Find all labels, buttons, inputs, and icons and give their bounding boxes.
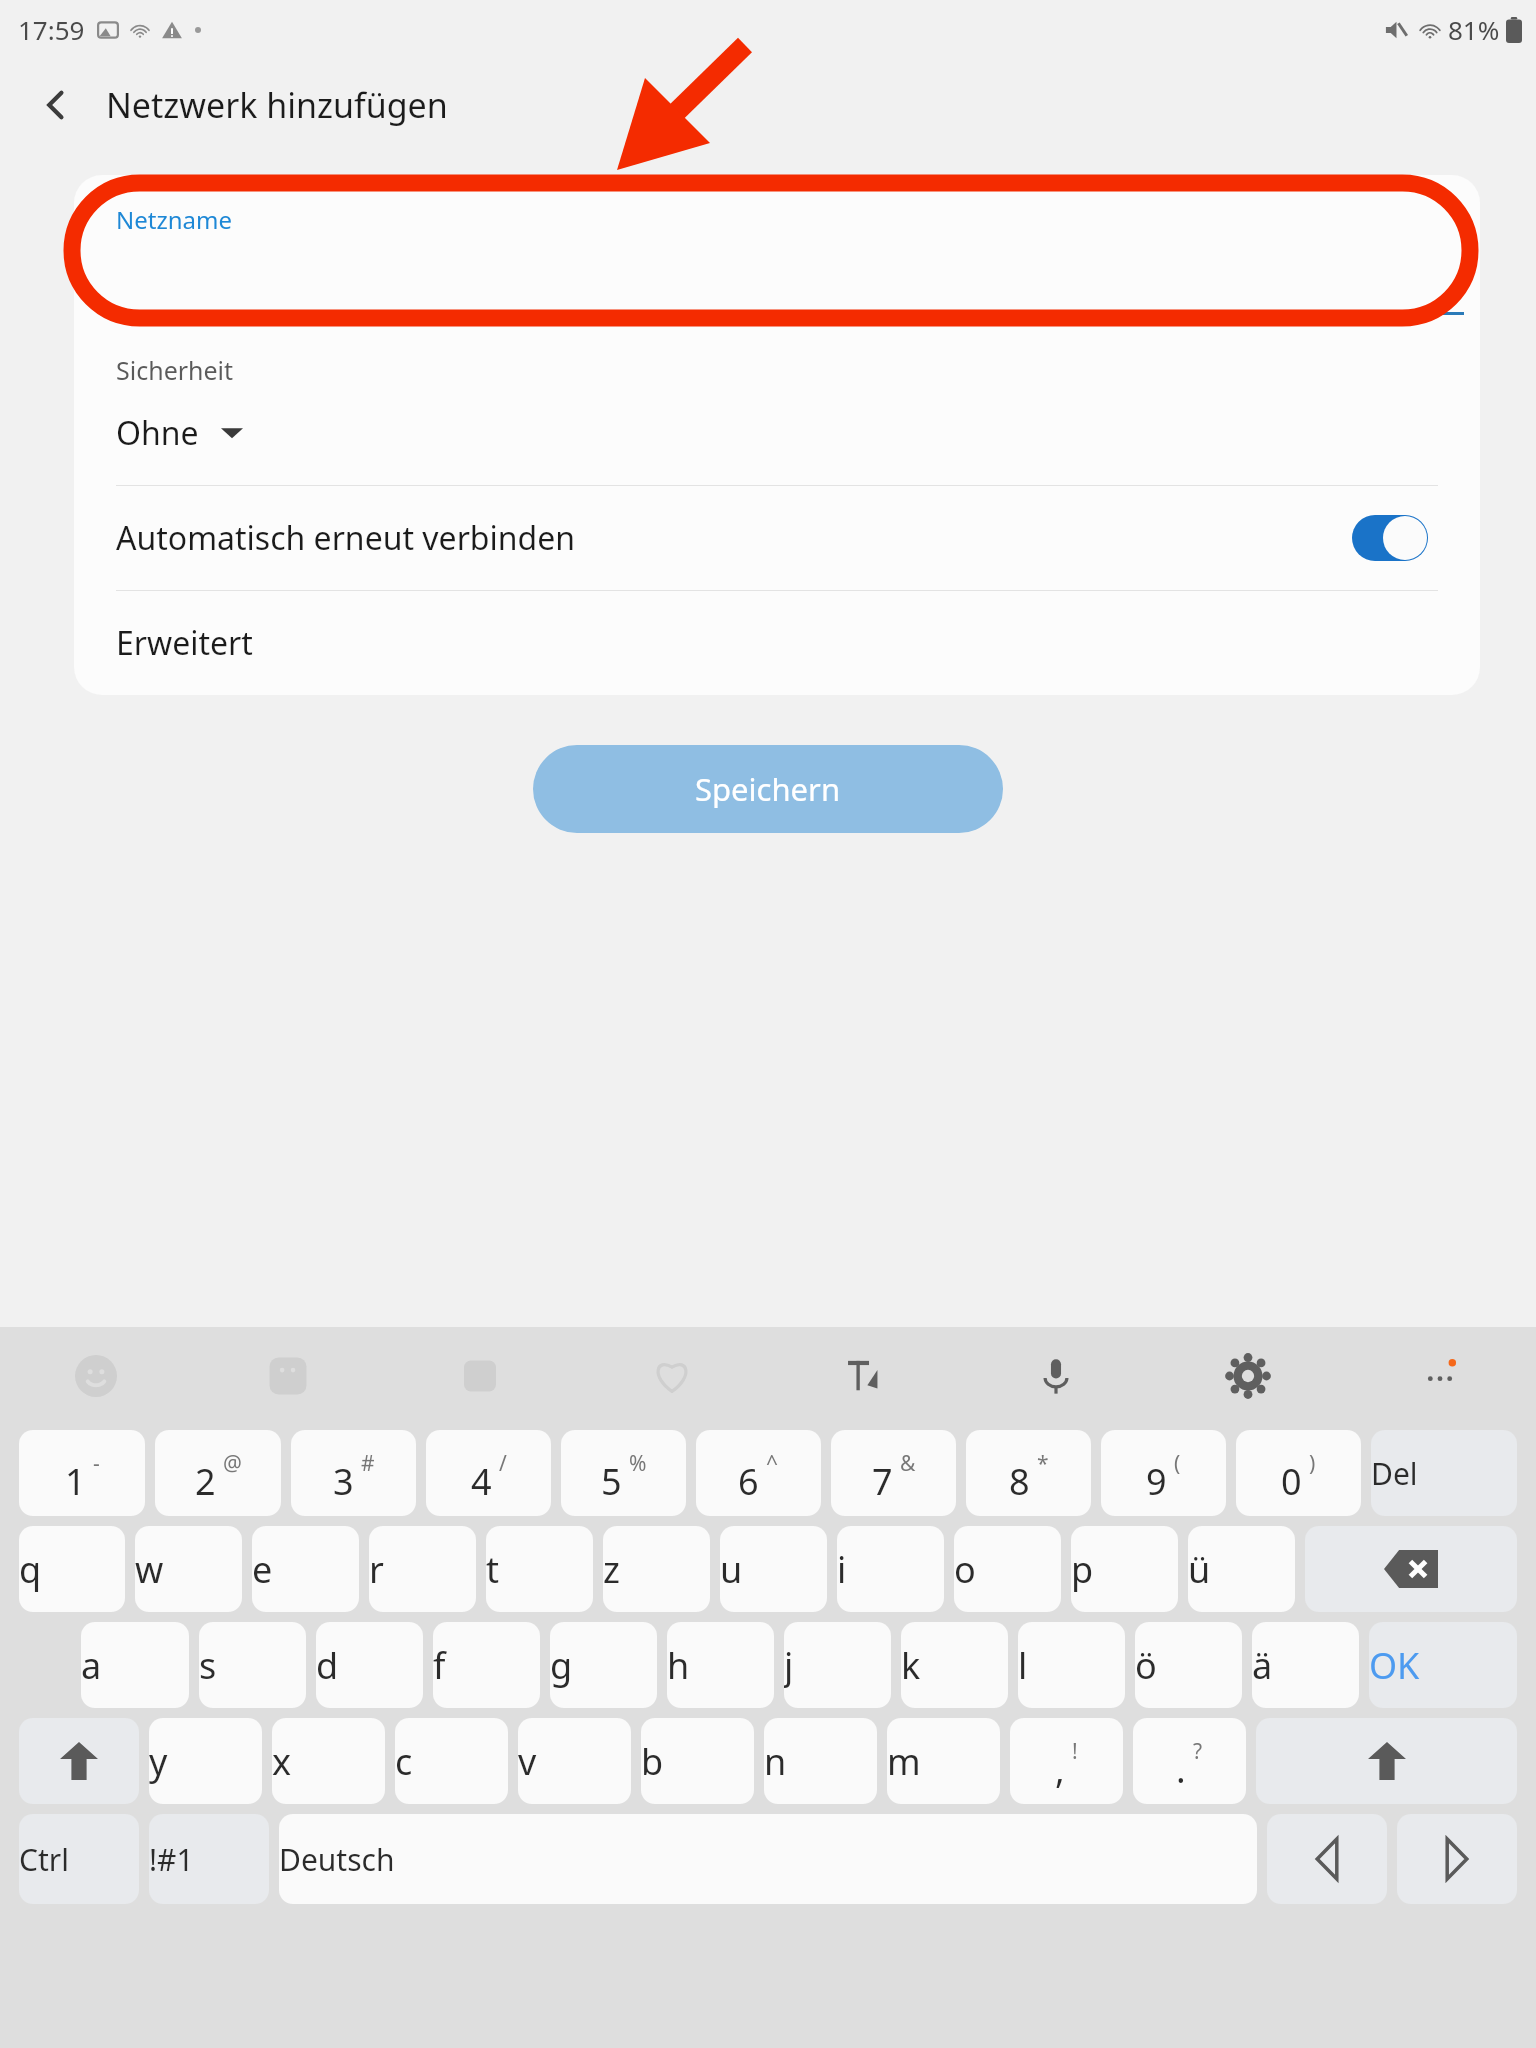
staticText: Erweitert [116,621,253,665]
button[interactable]: OK [1369,1622,1517,1708]
button[interactable]: Emoji [0,1327,192,1425]
button[interactable]: 2 [155,1430,281,1516]
staticText: 5 [601,1457,622,1506]
button[interactable]: . [1133,1718,1246,1804]
button[interactable]: t [486,1526,593,1612]
button[interactable]: Speichern [533,745,1003,833]
button[interactable]: ö [1135,1622,1242,1708]
staticText: q [19,1545,125,1594]
button[interactable]: Sicherheit [74,343,1480,471]
button[interactable]: Einstellungen [1152,1327,1344,1425]
button[interactable]: Erweitert [74,591,1480,695]
button[interactable]: Pfeil links [1267,1814,1387,1904]
staticText: 8 [1009,1457,1030,1506]
button[interactable]: w [135,1526,242,1612]
staticText: t [486,1545,593,1594]
staticText: s [199,1641,306,1690]
button[interactable]: 5 [561,1430,686,1516]
button[interactable]: y [149,1718,262,1804]
staticText: - [93,1449,100,1478]
staticText: Sicherheit [116,353,234,387]
button[interactable]: 7 [831,1430,956,1516]
staticText: f [433,1641,540,1690]
staticText: Ctrl [19,1839,139,1880]
staticText: !#1 [149,1839,269,1880]
button[interactable]: 0 [1236,1430,1361,1516]
staticText: 2 [195,1457,216,1506]
button[interactable]: Löschen [1305,1526,1517,1612]
button[interactable]: Netzname [74,175,1480,315]
button[interactable]: !#1 [149,1814,269,1904]
button[interactable]: Sticker [192,1327,384,1425]
button[interactable]: m [887,1718,1000,1804]
button[interactable]: 9 [1101,1430,1226,1516]
button[interactable]: v [518,1718,631,1804]
button[interactable]: ä [1252,1622,1359,1708]
button[interactable]: Mehr [1344,1327,1536,1425]
button[interactable]: ü [1188,1526,1295,1612]
staticText: @ [223,1449,242,1478]
button[interactable]: Zurück [28,77,84,133]
button[interactable]: a [81,1622,189,1708]
staticText: ) [1309,1449,1316,1478]
button[interactable]: r [369,1526,476,1612]
staticText: d [316,1641,423,1690]
staticText: e [252,1545,359,1594]
button[interactable]: k [901,1622,1008,1708]
button[interactable]: Deutsch [279,1814,1257,1904]
staticText: . [1176,1745,1186,1794]
button[interactable]: h [667,1622,774,1708]
staticText: k [901,1641,1008,1690]
button[interactable]: Textbearbeitung [768,1327,960,1425]
staticText: v [518,1737,631,1786]
button[interactable]: Umschalt [19,1718,139,1804]
button[interactable]: Automatisch erneut verbinden [74,486,1480,590]
staticText: ö [1135,1641,1242,1690]
button[interactable]: Pfeil rechts [1397,1814,1517,1904]
button[interactable]: u [720,1526,827,1612]
button[interactable]: x [272,1718,385,1804]
button[interactable]: , [1010,1718,1123,1804]
staticText: OK [1369,1641,1517,1690]
button[interactable]: Del [1371,1430,1517,1516]
staticText: * [1037,1449,1049,1478]
button[interactable]: q [19,1526,125,1612]
staticText: y [149,1737,262,1786]
staticText: % [629,1449,647,1478]
button[interactable]: Ctrl [19,1814,139,1904]
button[interactable]: 3 [291,1430,416,1516]
button[interactable]: o [954,1526,1061,1612]
button[interactable]: GIF [384,1327,576,1425]
staticText: 0 [1281,1457,1302,1506]
button[interactable]: c [395,1718,508,1804]
button[interactable]: 4 [426,1430,551,1516]
staticText: 1 [65,1457,86,1506]
staticText: ü [1188,1545,1295,1594]
staticText: z [603,1545,710,1594]
button[interactable]: Spracheingabe [960,1327,1152,1425]
staticText: / [499,1449,507,1478]
button[interactable]: b [641,1718,754,1804]
staticText: & [900,1449,916,1478]
button[interactable]: n [764,1718,877,1804]
button[interactable]: s [199,1622,306,1708]
button[interactable]: i [837,1526,944,1612]
button[interactable]: Umschalt [1256,1718,1517,1804]
button[interactable]: z [603,1526,710,1612]
button[interactable]: d [316,1622,423,1708]
button[interactable]: l [1018,1622,1125,1708]
button[interactable]: 8 [966,1430,1091,1516]
button[interactable]: g [550,1622,657,1708]
staticText: n [764,1737,877,1786]
button[interactable]: e [252,1526,359,1612]
button[interactable]: f [433,1622,540,1708]
staticText: Netzwerk hinzufügen [106,82,448,128]
button[interactable]: j [784,1622,891,1708]
staticText: Netzname [116,203,232,236]
button[interactable]: 1 [19,1430,145,1516]
button[interactable]: 6 [696,1430,821,1516]
staticText: 17:59 [18,12,85,47]
staticText: g [550,1641,657,1690]
button[interactable]: p [1071,1526,1178,1612]
